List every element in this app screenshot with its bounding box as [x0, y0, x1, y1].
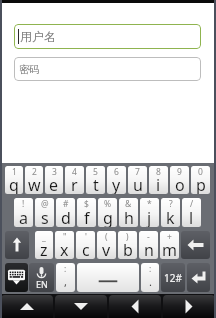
button[interactable]: Down	[55, 295, 107, 318]
staticText: l	[189, 207, 194, 227]
button[interactable]: 8	[149, 166, 168, 194]
button[interactable]: 0	[191, 166, 210, 194]
button[interactable]: &	[119, 198, 138, 227]
staticText: "	[63, 231, 67, 243]
button[interactable]: +	[160, 231, 179, 259]
staticText: 3	[52, 166, 57, 178]
staticText: z	[40, 239, 48, 259]
staticText: x	[60, 239, 69, 259]
staticText: 1	[12, 166, 17, 178]
staticText: #	[63, 198, 69, 210]
staticText: i	[156, 174, 161, 194]
staticText: m	[162, 239, 177, 259]
button[interactable]: :	[141, 263, 159, 292]
button[interactable]: 3	[45, 166, 63, 194]
button[interactable]: 用户名	[14, 24, 201, 49]
staticText: d	[61, 207, 71, 227]
button[interactable]: /	[182, 198, 201, 227]
staticText: :	[64, 263, 67, 275]
button[interactable]: %	[98, 198, 117, 227]
button[interactable]: Voice input, English	[29, 263, 54, 292]
staticText: c	[82, 239, 90, 259]
button[interactable]: Shift	[5, 231, 29, 259]
staticText: 6	[114, 166, 119, 178]
button[interactable]: 1	[5, 166, 23, 194]
staticText: f	[84, 207, 90, 227]
button[interactable]: 6	[107, 166, 126, 194]
button[interactable]: '	[76, 231, 95, 259]
staticText: *	[147, 198, 152, 210]
staticText: g	[103, 207, 113, 227]
staticText: a	[19, 207, 28, 227]
button[interactable]: 9	[170, 166, 189, 194]
staticText: '	[85, 231, 87, 243]
button[interactable]: *	[140, 198, 159, 227]
staticText: n	[144, 239, 154, 259]
button[interactable]: $	[77, 198, 96, 227]
button[interactable]: Backspace	[181, 231, 210, 259]
button[interactable]: 12#	[161, 263, 185, 292]
staticText: .	[149, 274, 152, 289]
staticText: b	[123, 239, 133, 259]
staticText: 0	[198, 166, 203, 178]
staticText: 9	[177, 166, 182, 178]
staticText: %	[104, 198, 112, 210]
staticText: EN	[36, 278, 48, 290]
staticText: @	[41, 198, 49, 210]
button[interactable]: 4	[65, 166, 84, 194]
staticText: 用户名	[20, 29, 56, 44]
staticText: o	[175, 174, 185, 194]
button[interactable]: :	[56, 263, 75, 292]
staticText: )	[126, 231, 129, 243]
button[interactable]: Up	[1, 295, 53, 318]
staticText: q	[9, 174, 19, 194]
staticText: p	[196, 174, 206, 194]
staticText: 密码	[19, 63, 39, 76]
button[interactable]: #	[56, 198, 75, 227]
button[interactable]: 密码	[14, 57, 201, 81]
staticText: $	[84, 198, 89, 210]
staticText: 5	[93, 166, 98, 178]
staticText: !	[22, 198, 25, 210]
staticText: 8	[156, 166, 161, 178]
button[interactable]: -	[139, 231, 158, 259]
staticText: u	[133, 174, 143, 194]
staticText: 4	[72, 166, 77, 178]
staticText: t	[93, 174, 99, 194]
staticText: j	[147, 207, 152, 227]
staticText: ?	[169, 198, 173, 210]
staticText: &	[125, 198, 132, 210]
staticText: e	[49, 174, 59, 194]
staticText: _	[42, 231, 46, 243]
button[interactable]: @	[35, 198, 54, 227]
button[interactable]: Enter	[187, 263, 210, 292]
button[interactable]: Space	[77, 263, 139, 292]
button[interactable]: ?	[161, 198, 180, 227]
staticText: s	[41, 207, 49, 227]
button[interactable]: _	[35, 231, 53, 259]
staticText: v	[102, 239, 111, 259]
staticText: h	[124, 207, 134, 227]
staticText: r	[71, 174, 78, 194]
button[interactable]: )	[118, 231, 137, 259]
button[interactable]: (	[97, 231, 116, 259]
button[interactable]: 5	[86, 166, 105, 194]
staticText: w	[28, 174, 41, 194]
staticText: :	[149, 263, 152, 275]
button[interactable]: !	[14, 198, 33, 227]
button[interactable]: Switch keyboard	[5, 263, 28, 292]
staticText: -	[147, 231, 150, 243]
staticText: 12#	[164, 271, 182, 285]
button[interactable]: Left	[109, 295, 161, 318]
button[interactable]: 2	[25, 166, 43, 194]
button[interactable]: 7	[128, 166, 147, 194]
staticText: y	[112, 174, 121, 194]
staticText: (	[105, 231, 108, 243]
button[interactable]: "	[55, 231, 74, 259]
staticText: +	[167, 231, 172, 243]
staticText: 7	[135, 166, 140, 178]
staticText: ,	[64, 274, 67, 289]
staticText: /	[190, 198, 194, 210]
staticText: k	[166, 207, 175, 227]
button[interactable]: Right	[163, 295, 215, 318]
